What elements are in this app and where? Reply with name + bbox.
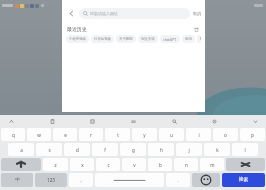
button[interactable]: Clipboard xyxy=(47,116,57,126)
staticText: c xyxy=(107,162,110,168)
staticText: b xyxy=(159,162,162,168)
staticText: x xyxy=(81,162,84,168)
staticText: m xyxy=(210,162,215,168)
button[interactable]: k xyxy=(204,143,230,156)
staticText: 取消 xyxy=(193,11,201,16)
button[interactable]: 取消 xyxy=(193,8,201,19)
button[interactable]: Shift xyxy=(1,158,41,171)
button[interactable]: chatGPT xyxy=(160,35,180,43)
staticText: u xyxy=(170,132,173,138)
staticText: d xyxy=(76,147,79,153)
button[interactable]: Space xyxy=(95,173,164,187)
button[interactable]: c xyxy=(96,158,120,171)
button[interactable]: Back xyxy=(66,8,77,19)
button[interactable]: Hide xyxy=(250,116,260,126)
staticText: f xyxy=(104,147,106,153)
staticText: 中 xyxy=(15,177,20,183)
staticText: v xyxy=(133,162,136,168)
button[interactable]: q xyxy=(1,128,25,141)
staticText: 搜索或输入网址 xyxy=(90,11,118,16)
button[interactable]: Sticker xyxy=(87,116,97,126)
staticText: i xyxy=(198,132,200,138)
button[interactable]: 123 xyxy=(35,173,67,187)
button[interactable]: u xyxy=(159,128,184,141)
staticText: q xyxy=(12,132,15,138)
button[interactable]: a xyxy=(8,143,34,156)
button[interactable]: Translate xyxy=(128,116,138,126)
button[interactable]: z xyxy=(43,158,68,171)
button[interactable]: w xyxy=(27,128,51,141)
button[interactable]: 中 xyxy=(1,173,33,187)
staticText: chatGPT xyxy=(163,37,177,42)
staticText: e xyxy=(64,132,67,138)
button[interactable]: t xyxy=(105,128,130,141)
staticText: . xyxy=(177,177,179,183)
staticText: 123 xyxy=(47,177,55,183)
staticText: t xyxy=(117,132,119,138)
staticText: z xyxy=(54,162,57,168)
staticText: 淘宝天猫 xyxy=(141,37,155,41)
button[interactable]: 小程序游戏 xyxy=(66,35,89,43)
button[interactable]: Voice xyxy=(6,116,16,126)
button[interactable]: v xyxy=(122,158,146,171)
button[interactable]: 抖音短视频 xyxy=(91,35,114,43)
button[interactable]: 新闻 xyxy=(182,35,195,43)
staticText: n xyxy=(185,162,188,168)
staticText: k xyxy=(216,147,219,153)
staticText: g xyxy=(132,147,135,153)
button[interactable]: d xyxy=(64,143,90,156)
staticText: r xyxy=(90,132,92,138)
button[interactable]: Backspace xyxy=(226,158,265,171)
staticText: o xyxy=(224,132,227,138)
button[interactable]: i xyxy=(186,128,211,141)
staticText: l xyxy=(244,147,246,153)
button[interactable]: n xyxy=(174,158,198,171)
button[interactable]: x xyxy=(70,158,94,171)
button[interactable]: l xyxy=(232,143,258,156)
staticText: w xyxy=(37,132,41,138)
staticText: j xyxy=(188,147,190,153)
button[interactable]: j xyxy=(176,143,202,156)
button[interactable]: , xyxy=(69,173,93,187)
button[interactable]: 淘宝天猫 xyxy=(138,35,158,43)
button[interactable]: p xyxy=(240,128,265,141)
button[interactable]: Settings xyxy=(209,116,219,126)
button[interactable]: b xyxy=(148,158,172,171)
button[interactable]: f xyxy=(92,143,118,156)
button[interactable]: 网页搜索 xyxy=(197,35,201,43)
staticText: 天气预报 xyxy=(119,37,133,41)
button[interactable]: 搜索或输入网址 xyxy=(79,8,190,19)
staticText: , xyxy=(80,177,82,183)
button[interactable]: h xyxy=(148,143,174,156)
button[interactable]: Delete history xyxy=(192,25,200,33)
staticText: 新闻 xyxy=(185,37,192,41)
button[interactable]: g xyxy=(120,143,146,156)
button[interactable]: r xyxy=(79,128,103,141)
button[interactable]: 搜索 xyxy=(222,173,265,187)
staticText: 搜索 xyxy=(239,177,248,183)
staticText: h xyxy=(160,147,163,153)
button[interactable]: s xyxy=(36,143,62,156)
button[interactable]: e xyxy=(53,128,77,141)
button[interactable]: 天气预报 xyxy=(116,35,136,43)
staticText: p xyxy=(251,132,254,138)
button[interactable]: y xyxy=(132,128,157,141)
staticText: y xyxy=(143,132,146,138)
button[interactable]: Emoji xyxy=(192,173,220,187)
staticText: 小程序游戏 xyxy=(69,37,86,41)
button[interactable]: Search xyxy=(169,116,179,126)
staticText: 最近历史 xyxy=(67,26,87,32)
staticText: 抖音短视频 xyxy=(94,37,111,41)
staticText: a xyxy=(20,147,23,153)
staticText: s xyxy=(48,147,51,153)
button[interactable]: m xyxy=(200,158,224,171)
button[interactable]: o xyxy=(213,128,238,141)
